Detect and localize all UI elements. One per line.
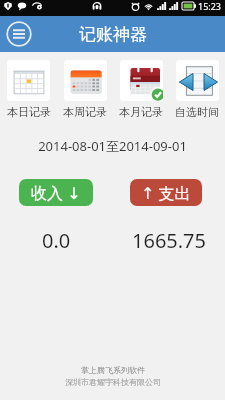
staticText: ↑ 支出 xyxy=(141,182,191,204)
button[interactable]: ↑ 支出 xyxy=(130,179,202,206)
staticText: 15:23 xyxy=(198,0,222,12)
staticText: 掌上腾飞系列软件 xyxy=(81,365,145,375)
button[interactable]: 本月记录 xyxy=(113,60,169,119)
staticText: 2014-08-01至2014-09-01 xyxy=(0,137,225,155)
button[interactable]: 自选时间 xyxy=(169,60,225,119)
staticText: 深圳市君耀宇科技有限公司 xyxy=(65,377,161,387)
button[interactable]: 收入 ↓ xyxy=(19,179,93,206)
staticText: 本月记录 xyxy=(119,105,163,119)
button[interactable]: Menu xyxy=(6,21,32,47)
staticText: 记账神器 xyxy=(79,24,147,45)
staticText: 收入 ↓ xyxy=(31,182,81,204)
button[interactable]: 本周记录 xyxy=(57,60,113,119)
staticText: 1665.75 xyxy=(132,227,206,254)
staticText: 本周记录 xyxy=(63,105,107,119)
staticText: 本日记录 xyxy=(7,105,51,119)
button[interactable]: 本日记录 xyxy=(0,60,57,119)
staticText: 0.0 xyxy=(42,227,71,254)
staticText: 自选时间 xyxy=(175,105,219,119)
